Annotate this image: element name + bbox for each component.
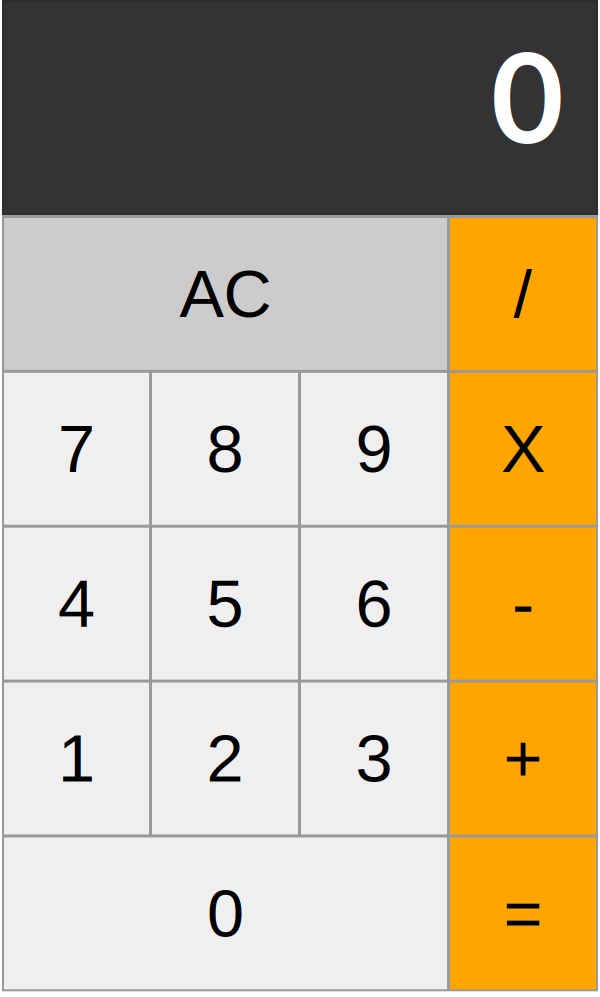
button[interactable]: 8 <box>152 373 298 525</box>
staticText: AC <box>179 257 271 331</box>
button[interactable]: 0 <box>4 837 447 989</box>
staticText: = <box>503 876 542 951</box>
button[interactable]: 6 <box>301 528 447 680</box>
button[interactable]: 1 <box>4 683 149 834</box>
button[interactable]: 2 <box>152 683 298 834</box>
button[interactable]: 7 <box>4 373 149 525</box>
staticText: 1 <box>58 721 95 796</box>
button[interactable]: Divide <box>450 218 596 370</box>
staticText: / <box>513 257 532 331</box>
staticText: 3 <box>355 721 392 796</box>
staticText: 0 <box>207 876 244 951</box>
button[interactable]: All clear <box>4 218 447 370</box>
staticText: 2 <box>206 721 243 796</box>
staticText: 4 <box>58 566 95 641</box>
staticText: + <box>503 721 542 796</box>
button[interactable]: Equals <box>450 837 596 989</box>
button[interactable]: Add <box>450 683 596 834</box>
staticText: 9 <box>355 412 392 486</box>
button[interactable]: 5 <box>152 528 298 680</box>
staticText: X <box>501 412 545 486</box>
button[interactable]: Subtract <box>450 528 596 680</box>
staticText: 8 <box>206 412 243 486</box>
button[interactable]: Multiply <box>450 373 596 525</box>
staticText: 6 <box>355 566 392 641</box>
button[interactable]: 3 <box>301 683 447 834</box>
button[interactable]: 4 <box>4 528 149 680</box>
staticText: 7 <box>58 412 95 486</box>
staticText: - <box>512 566 534 641</box>
staticText: 5 <box>206 566 243 641</box>
button[interactable]: 9 <box>301 373 447 525</box>
staticText: 0 <box>491 19 564 170</box>
